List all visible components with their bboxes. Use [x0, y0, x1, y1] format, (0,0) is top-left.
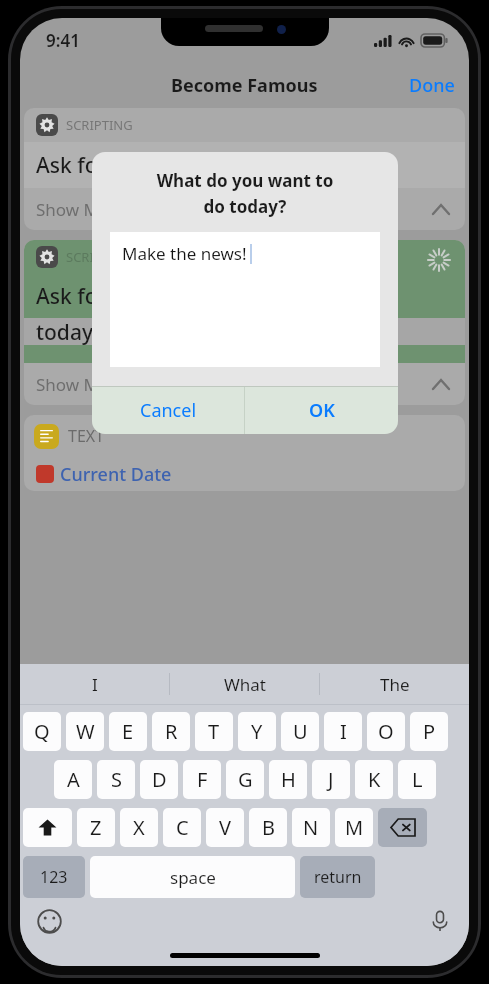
staticText: What do you want to do today? [106, 169, 384, 218]
staticText: Current Date [60, 462, 172, 487]
staticText: SCRIPTING [66, 116, 133, 134]
button[interactable]: E [109, 712, 147, 751]
staticText: B [262, 814, 275, 841]
staticText: Show More [36, 373, 126, 396]
button[interactable]: K [355, 760, 393, 799]
button[interactable]: M [335, 808, 373, 847]
staticText: K [368, 766, 381, 793]
button[interactable]: Shift [23, 808, 72, 847]
button[interactable]: A [54, 760, 92, 799]
staticText: OK [309, 398, 335, 423]
staticText: D [152, 766, 167, 793]
button[interactable]: J [312, 760, 350, 799]
button[interactable]: I [20, 664, 169, 704]
button[interactable]: Show More [24, 363, 465, 405]
staticText: U [293, 718, 308, 745]
staticText: R [165, 718, 178, 745]
button[interactable]: W [66, 712, 104, 751]
staticText: I [92, 673, 98, 696]
button[interactable]: Delete [378, 808, 427, 847]
staticText: Z [90, 814, 102, 841]
staticText: V [219, 814, 231, 841]
button[interactable]: Y [238, 712, 276, 751]
button[interactable]: Q [23, 712, 61, 751]
button[interactable]: T [195, 712, 233, 751]
button[interactable]: B [249, 808, 287, 847]
staticText: 123 [40, 866, 68, 888]
button[interactable]: L [398, 760, 436, 799]
staticText: I [340, 718, 347, 745]
button[interactable]: X [120, 808, 158, 847]
staticText: E [122, 718, 134, 745]
staticText: The [380, 673, 410, 696]
staticText: T [208, 718, 220, 745]
button[interactable]: Show More [24, 188, 465, 230]
staticText: X [133, 814, 145, 841]
button[interactable]: space [90, 856, 295, 898]
staticText: O [378, 718, 394, 745]
button[interactable]: The [320, 664, 469, 704]
staticText: TEXT [68, 425, 105, 447]
button[interactable]: U [281, 712, 319, 751]
button[interactable]: What [170, 664, 319, 704]
button[interactable]: N [292, 808, 330, 847]
staticText: Ask for Input [36, 282, 167, 311]
staticText: W [76, 718, 95, 745]
staticText: What [224, 673, 266, 696]
button[interactable]: P [410, 712, 448, 751]
staticText: Done [409, 73, 455, 98]
staticText: G [238, 766, 253, 793]
button[interactable]: S [97, 760, 135, 799]
button[interactable]: F [183, 760, 221, 799]
staticText: Q [34, 718, 50, 745]
button[interactable]: return [300, 856, 375, 898]
button[interactable]: Dictation [425, 906, 455, 936]
button[interactable]: Done [395, 67, 469, 104]
button[interactable]: Z [77, 808, 115, 847]
staticText: S [111, 766, 122, 793]
staticText: Show More [36, 198, 126, 221]
button[interactable]: O [367, 712, 405, 751]
staticText: F [197, 766, 208, 793]
staticText: today? [36, 318, 103, 345]
staticText: SCRIPTING [66, 248, 133, 266]
staticText: Make the news! [122, 242, 247, 265]
staticText: H [281, 766, 296, 793]
staticText: 9:41 [46, 29, 80, 52]
button[interactable]: 123 [23, 856, 85, 898]
staticText: Cancel [140, 398, 197, 423]
button[interactable]: OK [245, 387, 398, 434]
button[interactable]: I [324, 712, 362, 751]
staticText: Ask for Input [36, 151, 167, 180]
button[interactable]: G [226, 760, 264, 799]
staticText: M [345, 814, 364, 841]
staticText: N [303, 814, 319, 841]
button[interactable]: D [140, 760, 178, 799]
button[interactable]: Cancel [92, 387, 244, 434]
button[interactable]: R [152, 712, 190, 751]
staticText: return [314, 866, 362, 888]
staticText: Become Famous [171, 73, 318, 98]
staticText: C [176, 814, 189, 841]
staticText: P [423, 718, 436, 745]
button[interactable]: Emoji [34, 906, 64, 936]
staticText: A [67, 766, 80, 793]
staticText: Y [251, 718, 263, 745]
staticText: J [328, 766, 334, 793]
button[interactable]: V [206, 808, 244, 847]
button[interactable]: H [269, 760, 307, 799]
staticText: space [170, 866, 216, 889]
staticText: L [412, 766, 423, 793]
button[interactable]: C [163, 808, 201, 847]
